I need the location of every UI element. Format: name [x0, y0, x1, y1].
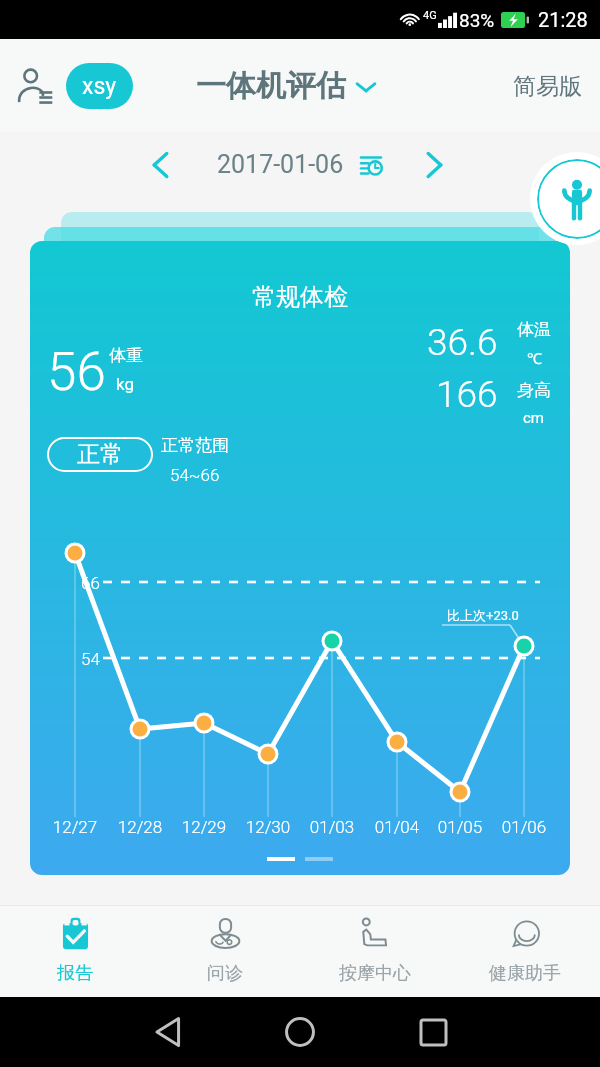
button[interactable]: 报告 — [0, 905, 150, 997]
staticText: 12/30 — [238, 817, 298, 837]
staticText: xsy — [82, 73, 117, 100]
staticText: 66 — [81, 573, 100, 593]
staticText: 12/29 — [174, 817, 234, 837]
button[interactable]: Previous day — [136, 141, 184, 189]
staticText: 01/04 — [367, 817, 427, 837]
button[interactable]: 按摩中心 — [300, 905, 450, 997]
staticText: 身高 — [517, 380, 551, 401]
button[interactable]: 健康助手 — [450, 905, 600, 997]
button[interactable]: Back — [141, 1005, 195, 1059]
staticText: 21:28 — [538, 8, 588, 31]
staticText: 正常 — [77, 440, 123, 469]
staticText: 54~66 — [170, 465, 220, 485]
staticText: 按摩中心 — [339, 962, 411, 985]
button[interactable]: History — [354, 148, 388, 182]
button[interactable]: Body measurement — [537, 159, 600, 239]
button[interactable]: 简易版 — [509, 55, 586, 117]
staticText: 报告 — [57, 962, 93, 985]
staticText: 一体机评估 — [196, 67, 346, 105]
button[interactable]: 常规体检 — [30, 241, 570, 875]
staticText: 166 — [436, 373, 498, 416]
staticText: 01/03 — [302, 817, 362, 837]
staticText: ℃ — [527, 348, 542, 368]
staticText: 4G — [423, 9, 437, 22]
staticText: 54 — [81, 649, 100, 669]
staticText: 12/28 — [110, 817, 170, 837]
staticText: 简易版 — [513, 72, 582, 101]
staticText: 83% — [459, 9, 495, 31]
staticText: kg — [116, 374, 134, 394]
staticText: cm — [523, 409, 545, 427]
staticText: 问诊 — [207, 962, 243, 985]
staticText: 健康助手 — [489, 962, 561, 985]
staticText: 正常范围 — [161, 435, 229, 456]
staticText: 体温 — [517, 319, 551, 340]
button[interactable]: xsy — [66, 63, 133, 109]
staticText: 56 — [47, 341, 106, 403]
staticText: 12/27 — [45, 817, 105, 837]
button[interactable]: 正常 — [47, 437, 153, 472]
staticText: 01/05 — [430, 817, 490, 837]
button[interactable]: Recents — [406, 1005, 460, 1059]
staticText: 比上次+23.0 — [447, 607, 519, 623]
button[interactable]: Next day — [410, 141, 458, 189]
staticText: 36.6 — [427, 321, 498, 364]
button[interactable]: Profile — [8, 59, 62, 113]
staticText: 体重 — [109, 345, 143, 366]
button[interactable]: 一体机评估 — [196, 53, 377, 119]
button[interactable]: Home — [273, 1005, 327, 1059]
button[interactable]: 问诊 — [150, 905, 300, 997]
staticText: 常规体检 — [30, 282, 570, 312]
staticText: 2017-01-06 — [217, 150, 344, 179]
staticText: 01/06 — [494, 817, 554, 837]
